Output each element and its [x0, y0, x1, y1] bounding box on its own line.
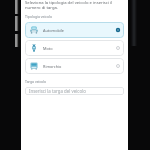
button[interactable]: Rimorchio: [25, 58, 124, 74]
staticText: Tipologia veicolo: [25, 14, 53, 19]
staticText: Inserisci la targa del veicolo: [29, 88, 86, 94]
staticText: Automobile: [43, 28, 64, 33]
button[interactable]: Inserisci la targa del veicolo: [25, 87, 124, 95]
other: Rimorchio: [30, 62, 38, 70]
other: Automobile: [30, 26, 38, 34]
staticText: Moto: [43, 46, 53, 51]
staticText: Targa veicolo: [25, 79, 47, 84]
button[interactable]: Moto: [25, 40, 124, 56]
button[interactable]: Automobile: [25, 22, 124, 38]
other: Moto: [30, 44, 38, 52]
staticText: Rimorchio: [43, 64, 62, 69]
staticText: Seleziona la tipologia del veicolo e ins…: [25, 0, 124, 10]
